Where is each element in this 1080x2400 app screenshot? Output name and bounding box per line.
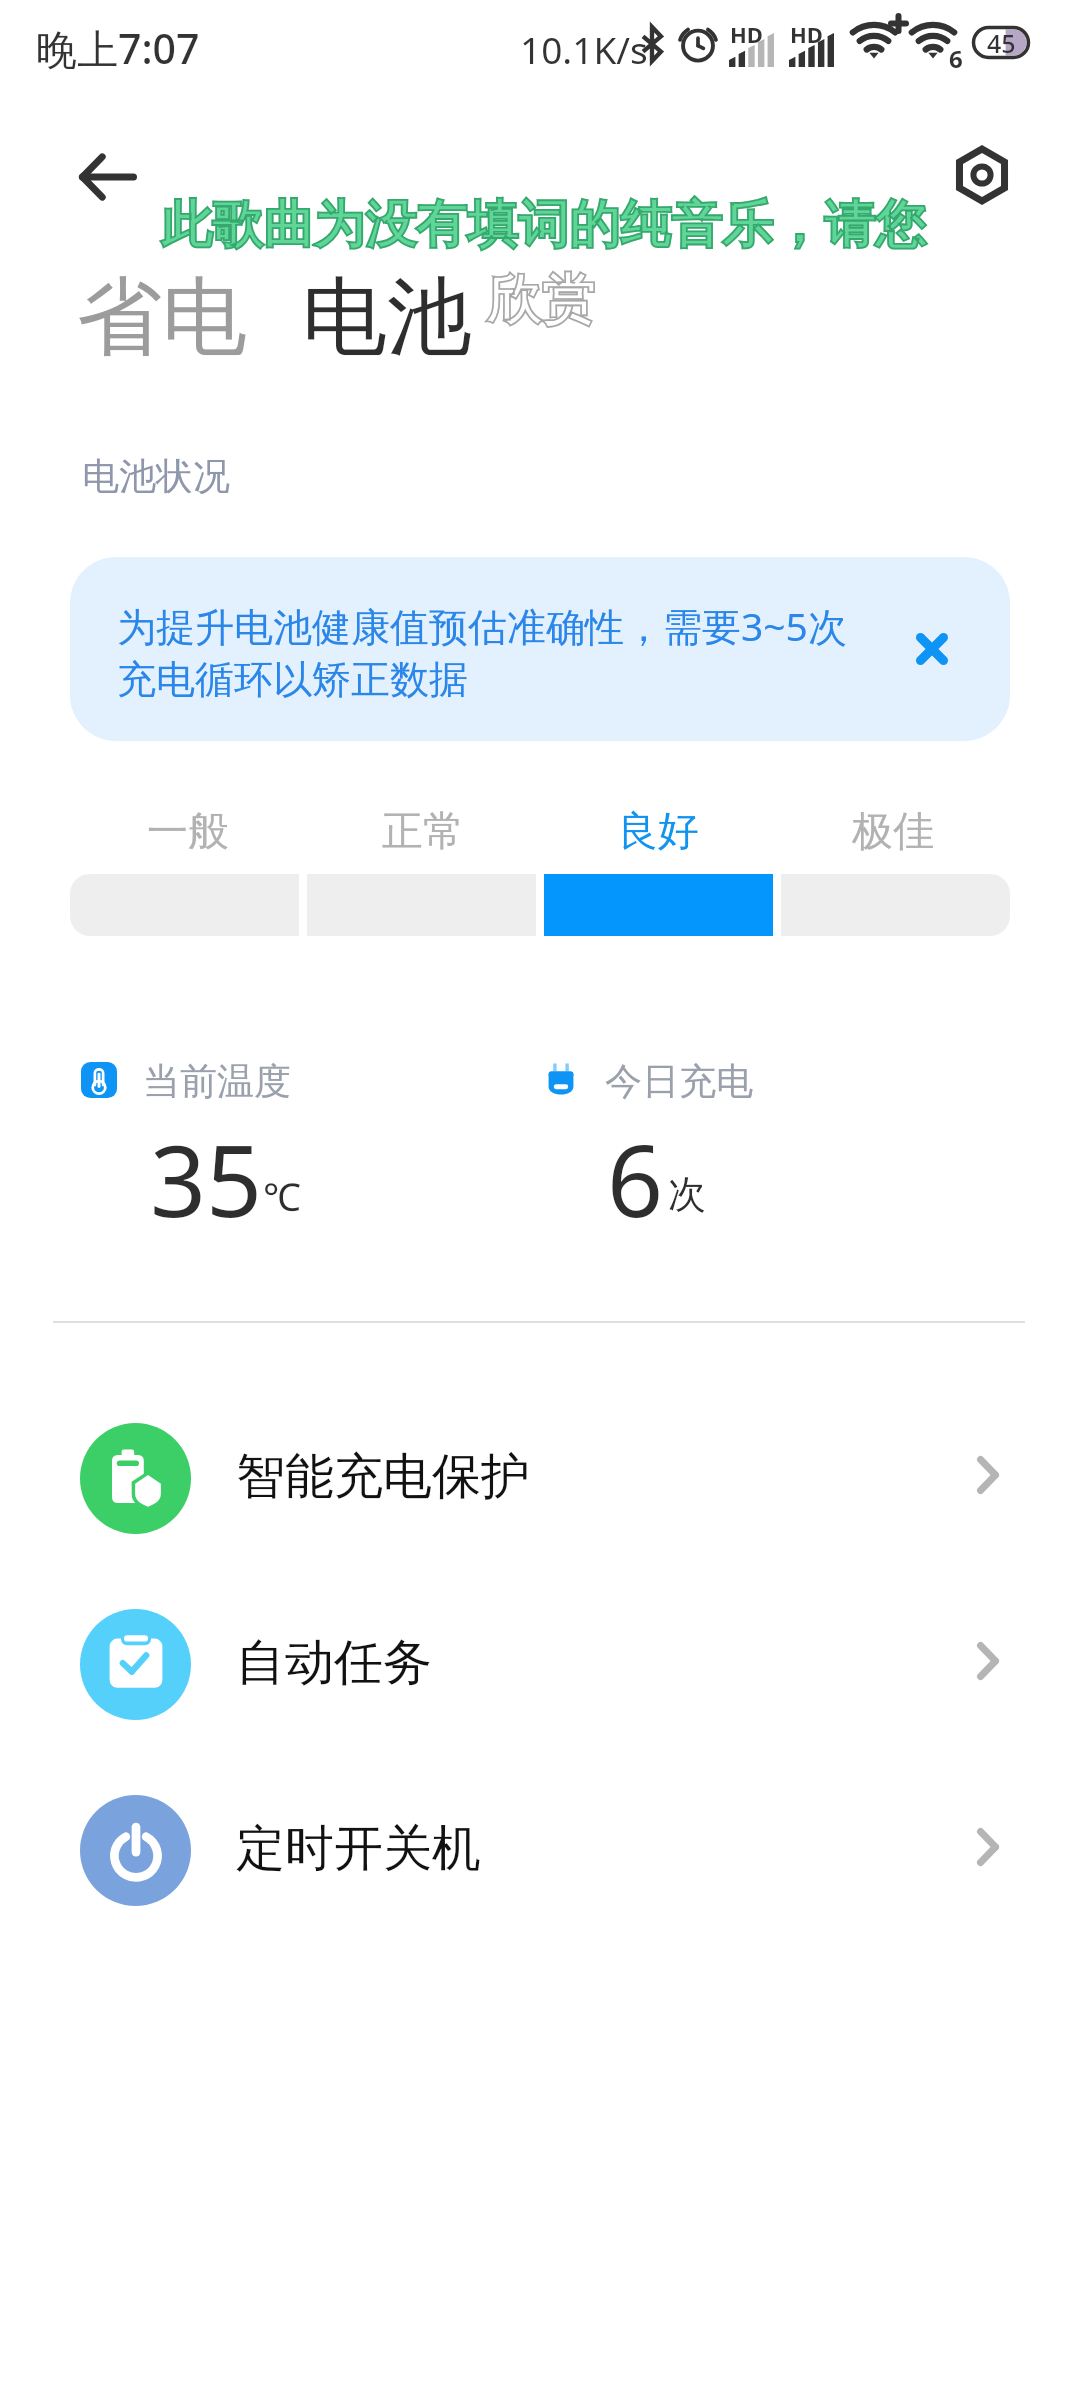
staticText: 省电 (77, 264, 247, 371)
staticText: 10.1K/s (520, 24, 648, 74)
button[interactable]: 定时开关机 (0, 1758, 1080, 1943)
button[interactable]: Close (894, 611, 970, 687)
staticText: 欣赏 (487, 266, 595, 334)
staticText: 6 (949, 42, 963, 75)
staticText: 当前温度 (143, 1058, 291, 1105)
staticText: 今日充电 (605, 1058, 753, 1105)
staticText: 极佳 (852, 806, 934, 858)
button[interactable]: Back (64, 133, 152, 221)
staticText: 此歌曲为没有填词的纯音乐，请您 (161, 193, 926, 257)
staticText: 6 (607, 1112, 664, 1245)
staticText: 自动任务 (236, 1632, 432, 1694)
staticText: 电池状况 (82, 453, 230, 500)
staticText: 电池 (302, 264, 472, 371)
staticText: 为提升电池健康值预估准确性，需要3~5次 充电循环以矫正数据 (117, 599, 847, 704)
button[interactable]: 电池 (295, 256, 480, 368)
staticText: 正常 (382, 806, 464, 858)
button[interactable]: 智能充电保护 (0, 1386, 1080, 1571)
staticText: 45 (987, 26, 1016, 59)
staticText: 智能充电保护 (236, 1446, 530, 1508)
staticText: HD (730, 19, 763, 49)
button[interactable]: 为提升电池健康值预估准确性，需要3~5次 充电循环以矫正数据 (70, 557, 1010, 741)
staticText: 良好 (617, 806, 699, 858)
staticText: 此歌曲为没有填词的纯音乐，请您 (161, 193, 926, 257)
staticText: 晚上7:07 (36, 20, 200, 76)
button[interactable]: 省电 (70, 256, 260, 368)
button[interactable]: 自动任务 (0, 1572, 1080, 1757)
staticText: 次 (668, 1170, 706, 1218)
staticText: 35 (150, 1112, 263, 1245)
staticText: 定时开关机 (236, 1818, 481, 1880)
staticText: 欣赏 (487, 266, 595, 334)
staticText: ℃ (263, 1170, 301, 1222)
staticText: HD (790, 19, 823, 49)
button[interactable]: Settings (938, 131, 1026, 219)
staticText: 一般 (147, 806, 229, 858)
